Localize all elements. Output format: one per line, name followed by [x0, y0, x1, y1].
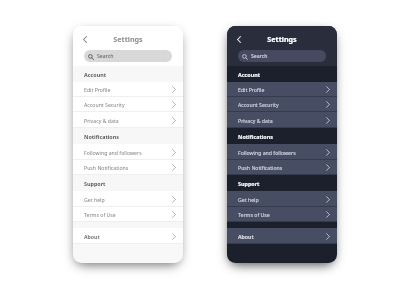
staticText: Search [251, 53, 268, 60]
button[interactable]: Edit Profile [73, 82, 183, 97]
staticText: Get help [84, 196, 105, 203]
staticText: Account [238, 71, 261, 78]
staticText: Edit Profile [238, 86, 265, 93]
staticText: Support [84, 180, 106, 187]
button[interactable]: Push Notifications [227, 160, 337, 175]
staticText: Settings [73, 34, 183, 44]
button[interactable]: Back [78, 32, 92, 46]
staticText: Privacy & data [238, 117, 273, 124]
button[interactable]: Privacy & data [227, 112, 337, 128]
button[interactable]: Search [84, 50, 172, 62]
button[interactable]: Terms of Use [227, 207, 337, 222]
staticText: About [238, 233, 254, 240]
staticText: Terms of Use [238, 211, 270, 218]
staticText: Privacy & data [84, 117, 119, 124]
staticText: Terms of Use [84, 211, 116, 218]
staticText: Following and followers [238, 149, 296, 156]
staticText: About [84, 233, 100, 240]
staticText: Get help [238, 196, 259, 203]
button[interactable]: Push Notifications [73, 160, 183, 175]
staticText: Account Security [238, 101, 279, 108]
button[interactable]: About [227, 228, 337, 244]
button[interactable]: Terms of Use [73, 207, 183, 222]
button[interactable]: Account Security [73, 97, 183, 112]
button[interactable]: Following and followers [227, 144, 337, 160]
staticText: Edit Profile [84, 86, 111, 93]
staticText: Notifications [84, 133, 119, 140]
button[interactable]: Get help [227, 191, 337, 207]
staticText: Push Notifications [238, 164, 283, 171]
staticText: Account Security [84, 101, 125, 108]
button[interactable]: Back [232, 32, 246, 46]
button[interactable]: Account Security [227, 97, 337, 112]
staticText: Search [97, 53, 114, 60]
staticText: Following and followers [84, 149, 142, 156]
button[interactable]: Search [238, 50, 326, 62]
staticText: Push Notifications [84, 164, 129, 171]
staticText: Account [84, 71, 107, 78]
button[interactable]: Following and followers [73, 144, 183, 160]
staticText: Support [238, 180, 260, 187]
staticText: Settings [227, 34, 337, 44]
button[interactable]: About [73, 228, 183, 244]
button[interactable]: Privacy & data [73, 112, 183, 128]
staticText: Notifications [238, 133, 273, 140]
button[interactable]: Edit Profile [227, 82, 337, 97]
button[interactable]: Get help [73, 191, 183, 207]
